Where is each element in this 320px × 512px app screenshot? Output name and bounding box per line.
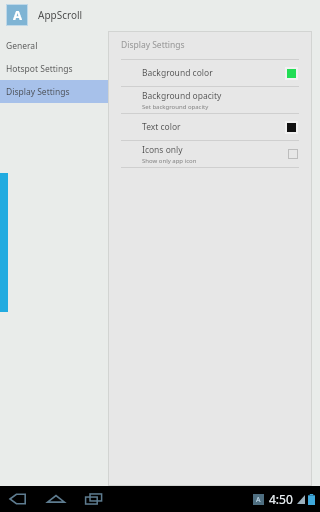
staticText: A [13, 6, 22, 24]
staticText: Show only app icon [142, 157, 197, 165]
staticText: AppScroll [38, 8, 83, 22]
button[interactable]: Background opacity [108, 87, 312, 113]
staticText: 4:50 [269, 491, 293, 507]
staticText: Background color [142, 67, 213, 79]
button[interactable]: Text color [108, 114, 312, 140]
button[interactable]: Icons only checkbox [288, 149, 298, 159]
staticText: Display Settings [121, 39, 185, 51]
staticText: Text color [142, 121, 181, 133]
staticText: Display Settings [6, 86, 70, 98]
staticText: A [256, 495, 261, 505]
button[interactable]: Recent apps [84, 492, 104, 506]
button[interactable]: Home [46, 492, 66, 506]
staticText: Set background opacity [142, 103, 209, 111]
button[interactable]: Hotspot Settings [0, 57, 108, 80]
button[interactable]: Background color [108, 60, 312, 86]
staticText: Hotspot Settings [6, 63, 73, 75]
button[interactable]: Display Settings [0, 80, 108, 103]
button[interactable]: Icons only [108, 141, 312, 167]
button[interactable]: Back [8, 492, 28, 506]
staticText: Background opacity [142, 90, 222, 102]
button[interactable]: General [0, 34, 108, 57]
staticText: General [6, 40, 38, 52]
staticText: Icons only [142, 144, 183, 156]
